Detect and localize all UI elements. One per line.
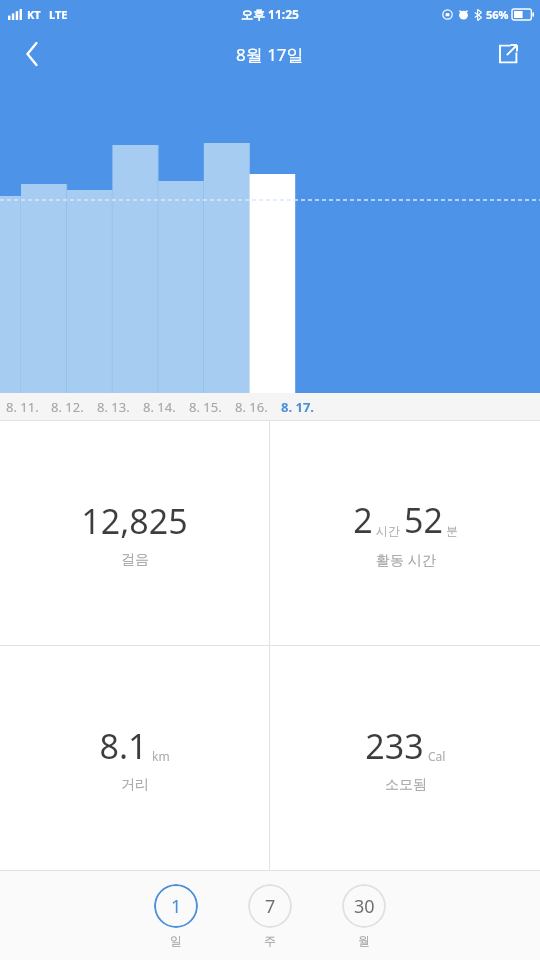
staticText: 소모됨 — [385, 776, 427, 794]
staticText: 8.1 — [99, 723, 148, 769]
staticText: 52 — [404, 497, 443, 543]
staticText: 2 — [353, 497, 373, 543]
staticText: LTE — [49, 7, 68, 22]
staticText: 12,825 — [81, 498, 188, 544]
button[interactable]: 8.1 — [0, 646, 269, 870]
staticText: 8. 15. — [189, 398, 222, 416]
staticText: 일 — [170, 933, 182, 948]
staticText: 오후 11:25 — [241, 6, 299, 22]
staticText: 56% — [486, 7, 509, 22]
button[interactable]: Share — [486, 32, 530, 76]
button[interactable]: 12,825 — [0, 421, 269, 645]
staticText: 주 — [264, 933, 276, 948]
button[interactable]: 30 — [338, 880, 390, 952]
staticText: 분 — [446, 523, 458, 538]
button[interactable]: Back — [10, 32, 54, 76]
staticText: 1 — [171, 894, 182, 919]
staticText: 8월 17일 — [236, 43, 304, 66]
staticText: 8. 17. — [281, 398, 314, 416]
staticText: KT — [27, 7, 41, 22]
staticText: 8. 14. — [143, 398, 176, 416]
staticText: 8. 16. — [235, 398, 268, 416]
staticText: 시간 — [376, 523, 400, 538]
staticText: 8. 12. — [51, 398, 84, 416]
staticText: 월 — [358, 933, 370, 948]
staticText: 8. 11. — [6, 398, 39, 416]
staticText: 걸음 — [121, 551, 149, 569]
staticText: 8. 13. — [97, 398, 130, 416]
staticText: 활동 시간 — [376, 550, 436, 569]
staticText: Cal — [428, 748, 446, 764]
staticText: 233 — [365, 723, 424, 769]
staticText: km — [152, 748, 170, 764]
button[interactable]: 1 — [150, 880, 202, 952]
staticText: 거리 — [121, 776, 149, 794]
staticText: 7 — [265, 894, 276, 919]
button[interactable]: 7 — [244, 880, 296, 952]
staticText: 30 — [354, 894, 375, 919]
button[interactable]: 233 — [270, 646, 540, 870]
